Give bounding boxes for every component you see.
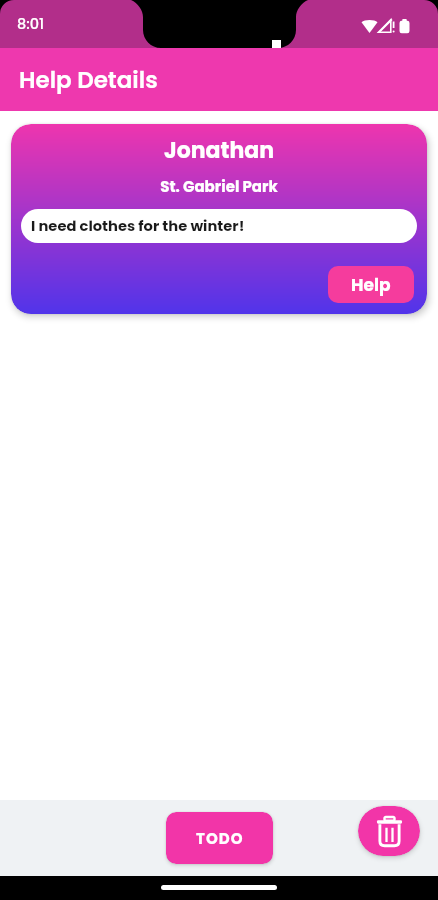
staticText: 8:01 xyxy=(17,14,45,34)
staticText: Help Details xyxy=(19,64,158,96)
button[interactable]: Delete xyxy=(358,806,420,856)
staticText: St. Gabriel Park xyxy=(11,176,427,197)
button[interactable]: Help xyxy=(328,266,414,303)
staticText: Help xyxy=(351,273,391,297)
staticText: Jonathan xyxy=(11,135,427,166)
button[interactable]: TODO xyxy=(166,812,273,864)
staticText: TODO xyxy=(196,828,244,849)
staticText: I need clothes for the winter! xyxy=(31,216,245,237)
button[interactable]: Jonathan xyxy=(11,124,427,314)
